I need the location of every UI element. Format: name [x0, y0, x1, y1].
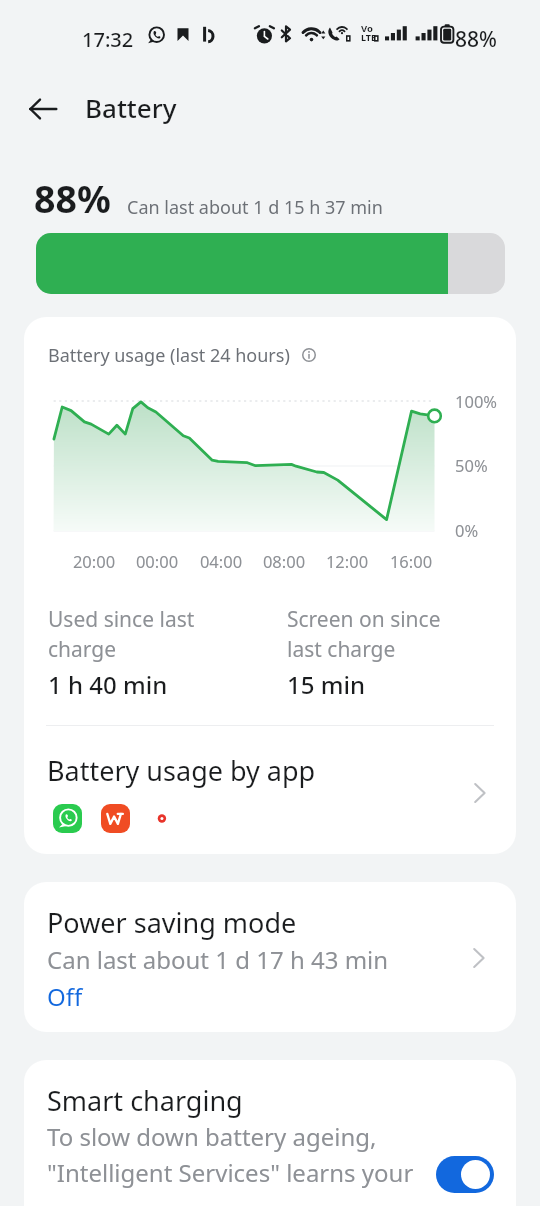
staticText: 0%	[455, 519, 479, 541]
staticText: "Intelligent Services" learns your	[47, 1156, 414, 1189]
staticText: 17:32	[82, 26, 134, 53]
staticText: Power saving mode	[47, 904, 297, 941]
staticText: 04:00	[191, 550, 251, 572]
button[interactable]: Smart charging toggle	[436, 1156, 494, 1193]
staticText: Can last about 1 d 17 h 43 min	[47, 943, 389, 976]
staticText: 00:00	[127, 550, 187, 572]
staticText: 12:00	[317, 550, 377, 572]
staticText: Battery usage by app	[47, 752, 316, 789]
staticText: To slow down battery ageing,	[47, 1120, 377, 1153]
staticText: 88%	[34, 173, 111, 224]
staticText: 16:00	[381, 550, 441, 572]
staticText: last charge	[287, 635, 396, 664]
staticText: Battery	[85, 90, 177, 125]
staticText: 50%	[455, 454, 488, 476]
staticText: Can last about 1 d 15 h 37 min	[127, 195, 383, 220]
button[interactable]: Battery usage by app	[24, 733, 516, 854]
staticText: Battery usage (last 24 hours)	[48, 343, 290, 368]
staticText: 100%	[455, 390, 498, 412]
staticText: Vo	[361, 22, 373, 35]
staticText: 88%	[455, 25, 497, 54]
staticText: charge	[48, 635, 117, 664]
button[interactable]: Back	[19, 85, 67, 133]
staticText: 08:00	[254, 550, 314, 572]
staticText: Smart charging	[47, 1082, 243, 1119]
button[interactable]: Power saving mode	[24, 882, 516, 1032]
staticText: Used since last	[48, 605, 195, 634]
staticText: 20:00	[64, 550, 124, 572]
staticText: Screen on since	[287, 605, 441, 634]
staticText: Off	[47, 980, 83, 1013]
staticText: LTE	[361, 31, 377, 43]
staticText: 15 min	[287, 668, 365, 701]
staticText: 1 h 40 min	[48, 668, 168, 701]
